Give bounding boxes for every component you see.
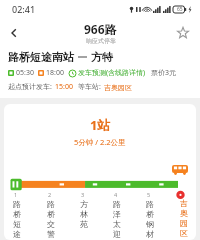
staticText: 迎 [113,229,121,239]
staticText: 02:41 [12,3,36,15]
button[interactable]: Back [0,19,28,47]
staticText: 2 [48,191,52,198]
staticText: 路 [47,199,55,209]
staticText: 奥 [180,208,188,218]
staticText: 966路 [84,21,117,37]
staticText: 1站 [90,116,111,134]
staticText: 路 [146,199,154,209]
staticText: 等车站: [78,82,101,92]
staticText: 桥 [47,209,55,219]
staticText: 警 [47,229,55,239]
staticText: 材 [146,229,154,239]
staticText: 发车预测(含线路详情) [78,68,146,78]
staticText: 5 [147,191,151,198]
staticText: 苑 [80,219,88,229]
staticText: 短 [13,219,21,229]
button[interactable]: 4 [110,191,143,240]
staticText: 交 [47,219,55,229]
staticText: 3 [81,191,85,198]
staticText: 钢 [146,219,154,229]
staticText: 方 [80,199,88,209]
staticText: 05:30 [16,68,34,78]
staticText: 15:00 [55,82,73,92]
staticText: 票价3元 [151,68,177,78]
staticText: 4 [114,191,118,198]
staticText: 响应式停靠 [86,37,116,45]
staticText: 园 [180,218,188,228]
staticText: 区 [180,228,188,238]
staticText: 吉奥园区 [104,83,132,92]
staticText: 太 [113,219,121,229]
staticText: 65 [177,6,183,13]
staticText: 吉 [180,198,188,208]
staticText: 1 [14,191,18,198]
staticText: 5分钟 / 2.2公里 [74,137,126,147]
staticText: 路桥短途南站 [8,50,74,64]
staticText: 桥 [13,209,21,219]
staticText: 路 [13,199,21,209]
staticText: 18:00 [46,68,64,78]
button[interactable]: 1 [10,191,44,240]
staticText: 路 [113,199,121,209]
button[interactable]: 发车预测(含线路详情) [69,68,146,78]
button[interactable]: 3 [77,191,110,229]
button[interactable]: 5 [143,191,176,240]
button[interactable]: 2 [44,191,77,240]
staticText: 途 [13,229,21,239]
staticText: 方特 [91,50,113,64]
staticText: 起点预计发车: [8,82,52,92]
staticText: 桥 [146,209,154,219]
button[interactable]: 收藏 [170,20,196,46]
staticText: 泽 [113,209,121,219]
staticText: 林 [80,209,88,219]
button[interactable]: 吉 [176,191,192,238]
